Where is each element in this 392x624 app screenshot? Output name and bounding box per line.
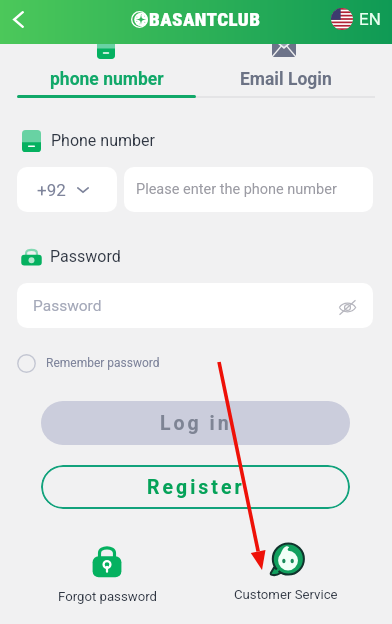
button[interactable]: Show password xyxy=(335,295,359,319)
staticText: Phone number xyxy=(51,131,155,150)
button[interactable]: Remember password xyxy=(17,353,160,373)
staticText: Register xyxy=(147,476,245,499)
button[interactable]: Forgot password xyxy=(27,544,187,604)
button[interactable]: Log in xyxy=(41,401,350,445)
staticText: Log in xyxy=(160,412,232,435)
staticText: +92 xyxy=(37,180,66,200)
staticText: phone number xyxy=(50,69,164,90)
button[interactable]: Customer Service xyxy=(206,542,366,602)
button[interactable]: Please enter the phone number xyxy=(124,167,373,212)
staticText: EN xyxy=(359,9,381,29)
button[interactable]: Register xyxy=(41,465,350,509)
staticText: Please enter the phone number xyxy=(136,181,337,198)
staticText: Remember password xyxy=(46,356,160,370)
staticText: Email Login xyxy=(240,69,332,90)
button[interactable]: EN xyxy=(331,8,381,30)
button[interactable]: Back xyxy=(5,6,32,33)
staticText: Password xyxy=(50,247,121,266)
staticText: Customer Service xyxy=(234,587,338,602)
button[interactable]: Password xyxy=(17,283,373,328)
button[interactable]: +92 xyxy=(17,167,117,212)
staticText: Password xyxy=(33,297,102,315)
button[interactable]: phone number xyxy=(17,44,196,98)
staticText: BASANTCLUB xyxy=(149,8,261,30)
staticText: Forgot password xyxy=(58,589,157,604)
button[interactable]: Email Login xyxy=(196,44,375,98)
